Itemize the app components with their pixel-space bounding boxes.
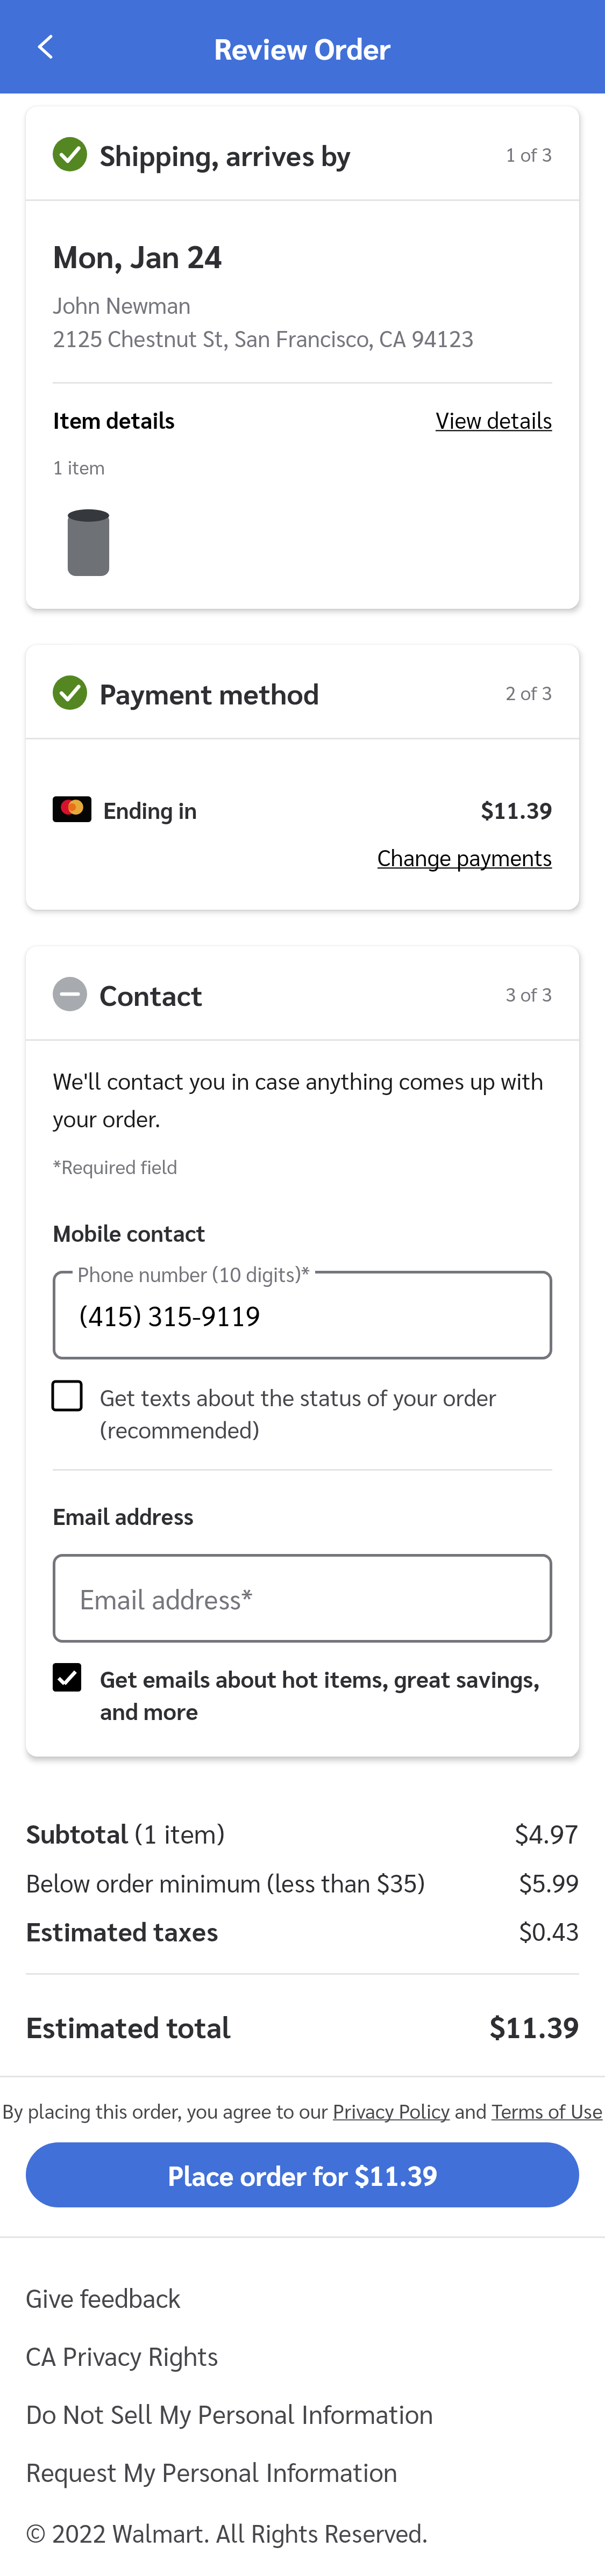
button[interactable]: View details <box>436 405 552 434</box>
staticText: Subtotal (1 item) <box>26 1816 225 1850</box>
staticText: Email address* <box>80 1581 253 1616</box>
staticText: Get emails about hot items, great saving… <box>100 1663 552 1725</box>
button[interactable]: Get emails about hot items, great saving… <box>53 1663 552 1725</box>
staticText: Ending in <box>103 795 197 824</box>
button[interactable]: CA Privacy Rights <box>26 2326 579 2384</box>
staticText: *Required field <box>53 1154 177 1179</box>
staticText: 1 of 3 <box>506 142 552 166</box>
staticText: $4.97 <box>515 1816 579 1850</box>
staticText: Phone number (10 digits)* <box>77 1260 310 1286</box>
staticText: Item details <box>53 405 175 434</box>
staticText: Shipping, arrives by <box>99 135 351 172</box>
staticText: CA Privacy Rights <box>26 2338 218 2372</box>
staticText: View details <box>436 405 552 434</box>
staticText: Payment method <box>99 674 319 711</box>
staticText: $0.43 <box>519 1915 579 1947</box>
button[interactable] <box>53 1271 552 1359</box>
staticText: Change payments <box>378 842 552 872</box>
button[interactable]: Give feedback <box>26 2268 579 2326</box>
staticText: © 2022 Walmart. All Rights Reserved. <box>26 2516 428 2549</box>
staticText: Email address <box>53 1501 194 1530</box>
staticText: $11.39 <box>481 794 552 824</box>
button[interactable]: Get texts about the status of your order… <box>53 1381 552 1444</box>
button[interactable]: Change payments <box>378 842 552 872</box>
staticText: 2 of 3 <box>506 680 552 704</box>
button[interactable]: Place order for $11.39 <box>26 2142 579 2207</box>
button[interactable] <box>53 1554 552 1643</box>
staticText: John Newman 2125 Chestnut St, San Franci… <box>53 290 474 352</box>
staticText: 3 of 3 <box>506 982 552 1006</box>
staticText: Below order minimum (less than $35) <box>26 1866 425 1898</box>
staticText: Do Not Sell My Personal Information <box>26 2397 433 2430</box>
staticText: Contact <box>99 975 203 1012</box>
staticText: Get texts about the status of your order… <box>100 1381 552 1444</box>
staticText: $11.39 <box>489 2007 579 2045</box>
staticText: (415) 315-9119 <box>80 1298 260 1333</box>
staticText: Request My Personal Information <box>26 2455 398 2488</box>
staticText: Estimated taxes <box>26 1913 218 1948</box>
staticText: We'll contact you in case anything comes… <box>53 1065 544 1132</box>
staticText: By placing this order, you agree to our … <box>2 2097 603 2123</box>
staticText: Give feedback <box>26 2280 181 2314</box>
staticText: Mon, Jan 24 <box>53 235 222 275</box>
button[interactable]: Request My Personal Information <box>26 2442 579 2500</box>
staticText: Place order for $11.39 <box>168 2157 438 2192</box>
button[interactable]: Back <box>11 12 80 81</box>
button[interactable]: Do Not Sell My Personal Information <box>26 2384 579 2442</box>
staticText: Estimated total <box>26 2007 231 2045</box>
staticText: Mobile contact <box>53 1218 206 1247</box>
staticText: 1 item <box>53 455 105 479</box>
staticText: Review Order <box>214 28 391 66</box>
staticText: $5.99 <box>519 1866 579 1898</box>
